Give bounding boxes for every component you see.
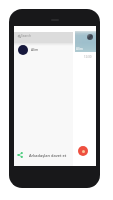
staticText: Alim: [76, 47, 83, 51]
button[interactable]: Share: [14, 149, 73, 161]
staticText: 12:30: [84, 55, 92, 59]
staticText: Arkadaşları davet et: [29, 153, 67, 158]
other: Share: [17, 152, 23, 158]
staticText: Alim: [31, 47, 39, 52]
button[interactable]: Alim: [75, 31, 96, 52]
button[interactable]: Record: [78, 146, 88, 156]
staticText: Search: [21, 34, 31, 38]
button[interactable]: Search: [14, 32, 73, 43]
button[interactable]: Alim: [14, 44, 73, 55]
